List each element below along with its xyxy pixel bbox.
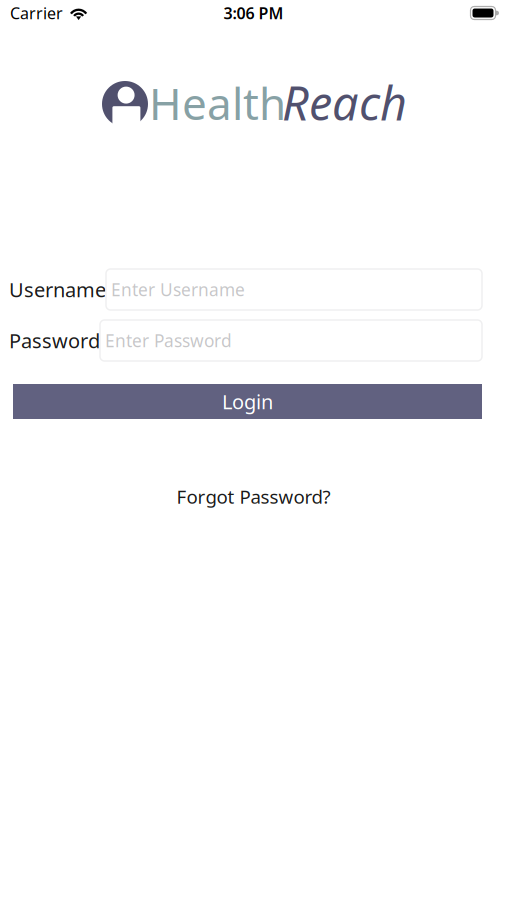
- staticText: 3:06 PM: [223, 2, 283, 24]
- button[interactable]: Forgot Password?: [166, 479, 340, 514]
- staticText: Forgot Password?: [176, 484, 330, 509]
- staticText: Password: [9, 327, 100, 354]
- staticText: Username: [9, 276, 106, 303]
- staticText: Carrier: [10, 2, 63, 24]
- staticText: Login: [222, 388, 273, 415]
- button[interactable]: Password: [100, 320, 482, 361]
- staticText: Reach: [282, 71, 407, 133]
- button[interactable]: Login: [13, 384, 482, 419]
- staticText: Enter Username: [111, 278, 245, 301]
- staticText: Health: [149, 74, 286, 132]
- button[interactable]: Username: [106, 269, 482, 310]
- staticText: Enter Password: [105, 329, 232, 352]
